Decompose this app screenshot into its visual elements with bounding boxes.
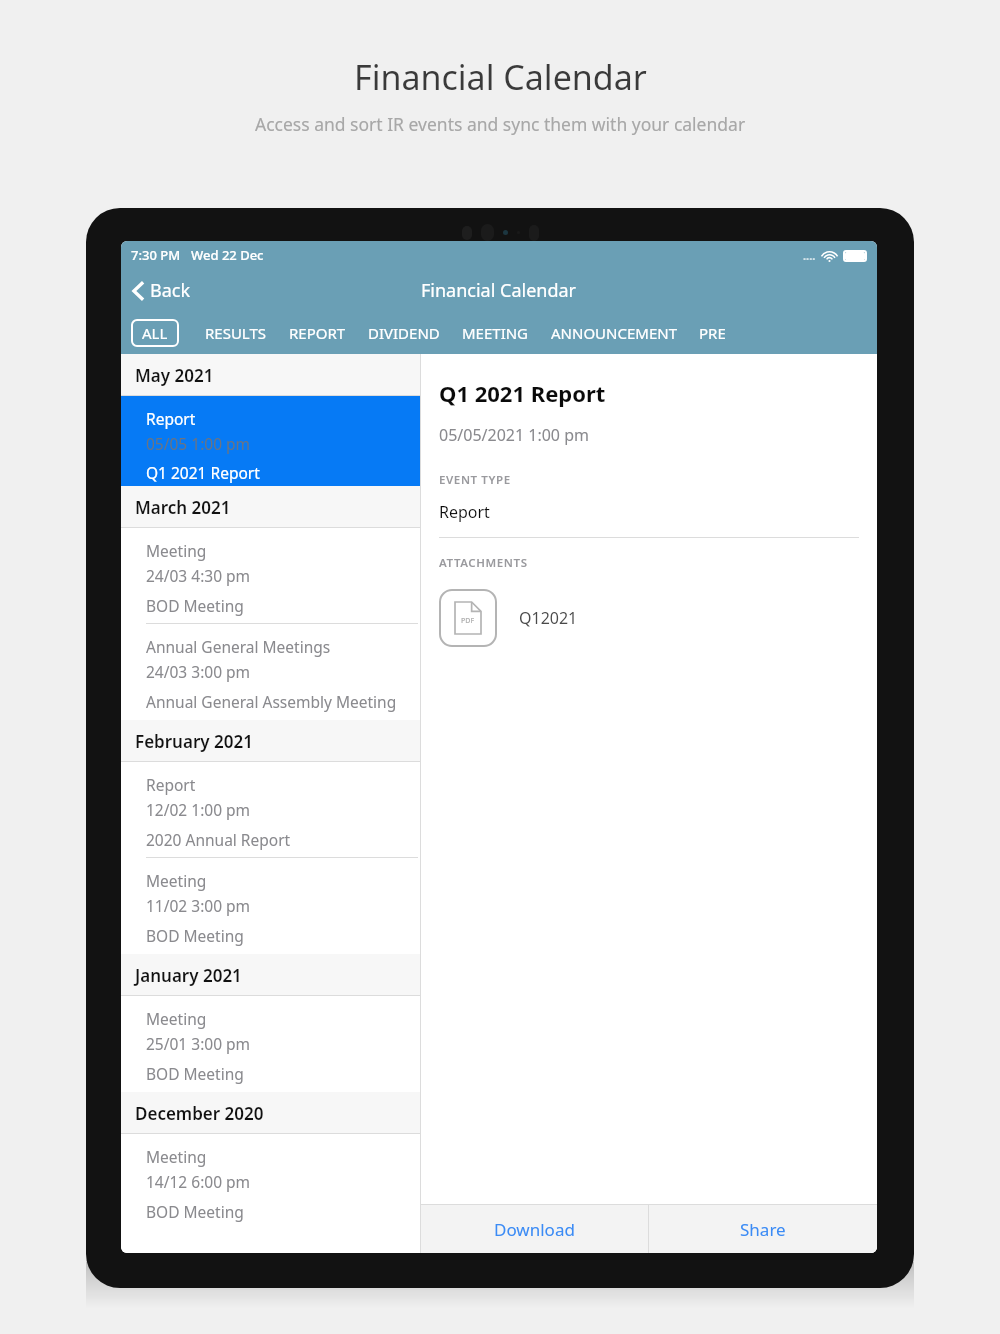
button[interactable]: REPORT bbox=[289, 317, 346, 349]
button[interactable]: PRE bbox=[699, 317, 726, 349]
staticText: DIVIDEND bbox=[368, 323, 440, 343]
staticText: Back bbox=[150, 278, 191, 303]
staticText: December 2020 bbox=[135, 1102, 264, 1125]
staticText: Wed 22 Dec bbox=[191, 246, 264, 264]
button[interactable]: Annual General Meetings bbox=[121, 624, 420, 720]
staticText: March 2021 bbox=[135, 496, 231, 519]
staticText: 14/12 6:00 pm bbox=[146, 1171, 251, 1192]
staticText: Q1 2021 Report bbox=[146, 462, 260, 483]
staticText: .... bbox=[803, 248, 816, 263]
button[interactable]: Open PDF Q12021 bbox=[439, 589, 578, 647]
staticText: Annual General Assembly Meeting bbox=[146, 691, 397, 712]
button[interactable]: Meeting bbox=[121, 858, 420, 954]
button[interactable]: Meeting bbox=[121, 1134, 420, 1230]
staticText: Report bbox=[146, 774, 196, 795]
staticText: 2020 Annual Report bbox=[146, 829, 291, 850]
staticText: 05/05/2021 1:00 pm bbox=[439, 424, 589, 446]
staticText: 24/03 3:00 pm bbox=[146, 661, 251, 682]
staticText: RESULTS bbox=[205, 323, 267, 343]
staticText: Financial Calendar bbox=[421, 278, 577, 303]
staticText: EVENT TYPE bbox=[439, 472, 511, 488]
staticText: 25/01 3:00 pm bbox=[146, 1033, 251, 1054]
staticText: MEETING bbox=[462, 323, 529, 343]
staticText: 7:30 PM bbox=[131, 246, 181, 264]
staticText: REPORT bbox=[289, 323, 346, 343]
staticText: Report bbox=[439, 501, 490, 523]
button[interactable]: Back bbox=[127, 274, 197, 307]
staticText: Annual General Meetings bbox=[146, 636, 331, 657]
button[interactable]: RESULTS bbox=[205, 317, 267, 349]
staticText: 12/02 1:00 pm bbox=[146, 799, 251, 820]
staticText: January 2021 bbox=[135, 964, 242, 987]
staticText: ALL bbox=[142, 323, 168, 343]
staticText: ATTACHMENTS bbox=[439, 555, 528, 571]
staticText: BOD Meeting bbox=[146, 595, 244, 616]
button[interactable]: Meeting bbox=[121, 996, 420, 1092]
staticText: Financial Calendar bbox=[354, 54, 647, 100]
staticText: May 2021 bbox=[135, 364, 214, 387]
staticText: Download bbox=[494, 1218, 575, 1241]
button[interactable]: ALL bbox=[131, 319, 179, 347]
staticText: Share bbox=[740, 1218, 786, 1241]
staticText: Meeting bbox=[146, 1146, 207, 1167]
staticText: Access and sort IR events and sync them … bbox=[255, 112, 746, 136]
staticText: PRE bbox=[699, 323, 726, 343]
staticText: Q12021 bbox=[519, 607, 578, 629]
staticText: Q1 2021 Report bbox=[439, 378, 606, 408]
button[interactable]: Meeting bbox=[121, 528, 420, 624]
button[interactable]: Report bbox=[121, 762, 420, 858]
staticText: Meeting bbox=[146, 870, 207, 891]
staticText: 05/05 1:00 pm bbox=[146, 433, 251, 454]
staticText: Report bbox=[146, 408, 196, 429]
staticText: Meeting bbox=[146, 540, 207, 561]
button[interactable]: ANNOUNCEMENT bbox=[551, 317, 677, 349]
staticText: 24/03 4:30 pm bbox=[146, 565, 251, 586]
button[interactable]: Download bbox=[421, 1205, 648, 1253]
staticText: February 2021 bbox=[135, 730, 253, 753]
staticText: Meeting bbox=[146, 1008, 207, 1029]
staticText: 11/02 3:00 pm bbox=[146, 895, 251, 916]
staticText: BOD Meeting bbox=[146, 1201, 244, 1222]
staticText: BOD Meeting bbox=[146, 1063, 244, 1084]
staticText: BOD Meeting bbox=[146, 925, 244, 946]
button[interactable]: MEETING bbox=[462, 317, 529, 349]
staticText: ANNOUNCEMENT bbox=[551, 323, 677, 343]
button[interactable]: Share bbox=[649, 1205, 877, 1253]
staticText: PDF bbox=[461, 616, 475, 626]
button[interactable]: Report bbox=[121, 396, 420, 486]
button[interactable]: DIVIDEND bbox=[368, 317, 440, 349]
